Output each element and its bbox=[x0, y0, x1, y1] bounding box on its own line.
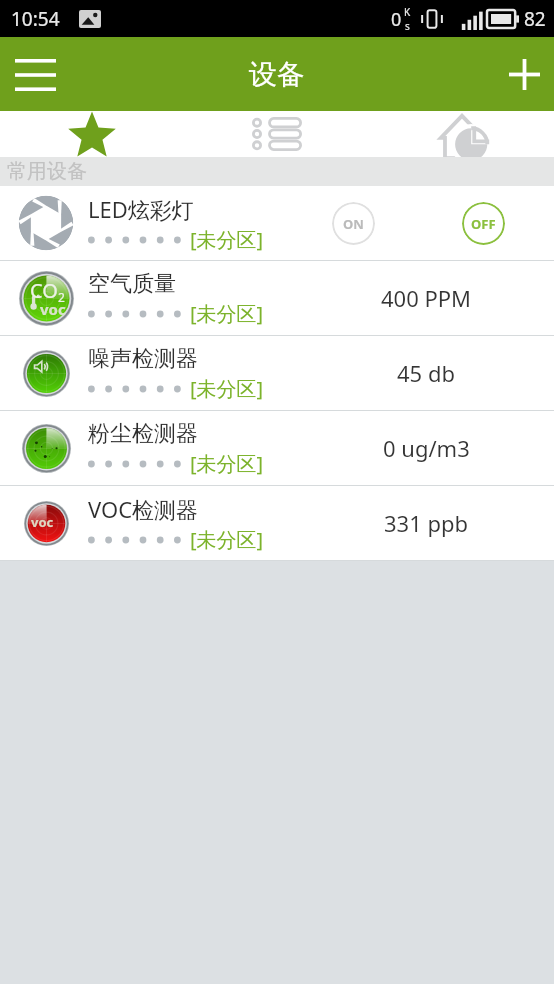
staticText: 331 ppb bbox=[384, 508, 469, 538]
staticText: [未分区] bbox=[190, 226, 264, 253]
staticText: [未分区] bbox=[190, 300, 264, 327]
staticText: 0 ug/m3 bbox=[383, 433, 470, 463]
staticText: 常用设备 bbox=[7, 159, 87, 184]
staticText: voc bbox=[40, 299, 66, 319]
staticText: ON bbox=[343, 215, 364, 233]
button[interactable]: 粉尘检测器 bbox=[0, 411, 554, 485]
staticText: CO bbox=[30, 277, 58, 304]
button[interactable]: Favorites bbox=[0, 111, 184, 157]
staticText: OFF bbox=[471, 215, 496, 233]
staticText: [未分区] bbox=[190, 375, 264, 402]
staticText: voc bbox=[31, 513, 54, 531]
staticText: 45 db bbox=[397, 358, 455, 388]
staticText: LED炫彩灯 bbox=[88, 194, 194, 224]
staticText: 2 bbox=[58, 289, 65, 305]
staticText: 设备 bbox=[249, 57, 305, 92]
staticText: 噪声检测器 bbox=[88, 345, 198, 373]
staticText: s bbox=[405, 19, 410, 33]
staticText: [未分区] bbox=[190, 450, 264, 477]
button[interactable]: LED炫彩灯 bbox=[0, 186, 554, 260]
staticText: 10:54 bbox=[11, 6, 60, 32]
staticText: 空气质量 bbox=[88, 270, 176, 298]
button[interactable]: OFF bbox=[462, 202, 505, 245]
staticText: K bbox=[404, 5, 411, 19]
button[interactable]: 噪声检测器 bbox=[0, 336, 554, 410]
button[interactable]: ON bbox=[332, 202, 375, 245]
staticText: 400 PPM bbox=[381, 283, 472, 313]
staticText: VOC检测器 bbox=[88, 494, 199, 524]
button[interactable]: Menu bbox=[4, 43, 66, 105]
staticText: [未分区] bbox=[190, 526, 264, 553]
button[interactable]: voc bbox=[0, 486, 554, 560]
staticText: 粉尘检测器 bbox=[88, 420, 198, 448]
staticText: 0 bbox=[391, 7, 402, 32]
staticText: 82 bbox=[524, 6, 546, 32]
button[interactable]: Add device bbox=[494, 44, 554, 104]
button[interactable]: CO bbox=[0, 261, 554, 335]
button[interactable]: Rooms bbox=[369, 111, 554, 157]
button[interactable]: All devices bbox=[184, 111, 369, 157]
